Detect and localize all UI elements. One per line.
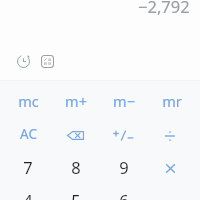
staticText: 8 [71,156,81,178]
button[interactable]: 6 [100,183,148,200]
staticText: mc [18,91,39,111]
staticText: mr [162,91,182,111]
staticText: 7 [23,156,33,178]
button[interactable]: AC [4,117,52,150]
button[interactable]: mr [148,84,196,117]
button[interactable]: m+ [52,84,100,117]
button[interactable]: Multiply [166,164,175,173]
staticText: 4 [23,189,33,200]
button[interactable]: 5 [52,183,100,200]
button[interactable]: Divide [148,117,196,150]
button[interactable]: Multiply [148,150,196,183]
button[interactable]: 8 [52,150,100,183]
staticText: 9 [119,156,129,178]
staticText: m+ [65,91,87,111]
staticText: 5 [71,189,81,200]
staticText: −2,792 [138,0,190,17]
button[interactable]: mc [4,84,52,117]
staticText: m− [113,91,135,111]
button[interactable]: Backspace [52,117,100,150]
button[interactable]: 7 [4,150,52,183]
button[interactable]: Backspace [67,131,84,140]
button[interactable]: 4 [4,183,52,200]
button[interactable]: 9 [100,150,148,183]
button[interactable]: m− [100,84,148,117]
staticText: AC [20,125,37,143]
button[interactable]: History [12,50,34,72]
button[interactable]: Divide [165,131,175,141]
button[interactable]: Plus minus [100,117,148,150]
button[interactable]: Plus minus [112,130,134,141]
button[interactable]: Scientific calculator [36,50,58,72]
staticText: 6 [119,189,129,200]
